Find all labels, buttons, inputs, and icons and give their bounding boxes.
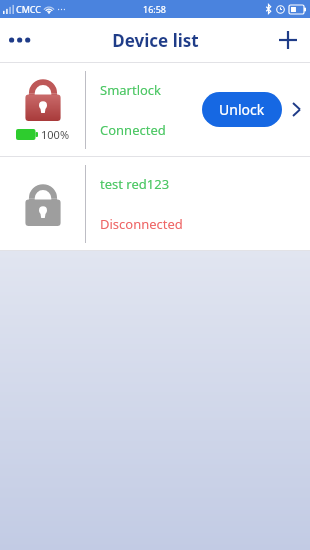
staticText: test red123 bbox=[100, 175, 170, 193]
staticText: 16:58 bbox=[143, 3, 167, 15]
staticText: 100% bbox=[41, 127, 70, 142]
staticText: Device list bbox=[112, 29, 199, 52]
staticText: CMCC bbox=[16, 3, 42, 15]
staticText: Disconnected bbox=[100, 215, 183, 233]
staticText: Connected bbox=[100, 121, 166, 139]
button[interactable]: Unlock bbox=[202, 92, 282, 127]
button[interactable]: More options bbox=[0, 18, 44, 62]
button[interactable]: Add device bbox=[266, 18, 310, 62]
button[interactable]: 100% bbox=[0, 63, 310, 156]
button[interactable]: test red123 bbox=[0, 157, 310, 250]
staticText: Unlock bbox=[219, 100, 265, 119]
button[interactable]: Device details bbox=[282, 63, 310, 156]
staticText: Smartlock bbox=[100, 81, 162, 99]
